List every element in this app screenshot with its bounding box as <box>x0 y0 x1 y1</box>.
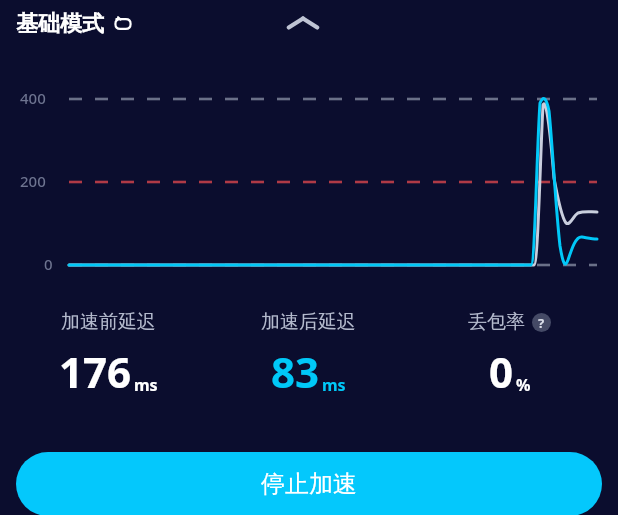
staticText: 0 <box>44 254 53 274</box>
staticText: 加速前延迟 <box>61 310 156 334</box>
button[interactable]: 停止加速 <box>16 452 602 515</box>
button[interactable]: 加速前延迟 <box>8 310 208 400</box>
button[interactable]: Collapse <box>279 4 327 42</box>
button[interactable]: 基础模式 <box>14 8 135 40</box>
staticText: 400 <box>20 88 46 108</box>
staticText: 停止加速 <box>261 469 357 499</box>
staticText: 176 <box>59 343 132 400</box>
staticText: 基础模式 <box>16 10 104 38</box>
staticText: 200 <box>20 171 46 191</box>
staticText: ? <box>538 314 545 332</box>
staticText: ms <box>322 374 346 396</box>
button[interactable]: 加速后延迟 <box>208 310 409 400</box>
staticText: % <box>516 374 531 396</box>
other: Help <box>532 313 551 332</box>
staticText: ms <box>134 374 158 396</box>
staticText: 丢包率 <box>468 310 525 334</box>
staticText: 83 <box>271 343 320 400</box>
button[interactable]: 丢包率 <box>409 310 610 400</box>
staticText: 0 <box>489 343 514 400</box>
staticText: 加速后延迟 <box>261 310 356 334</box>
